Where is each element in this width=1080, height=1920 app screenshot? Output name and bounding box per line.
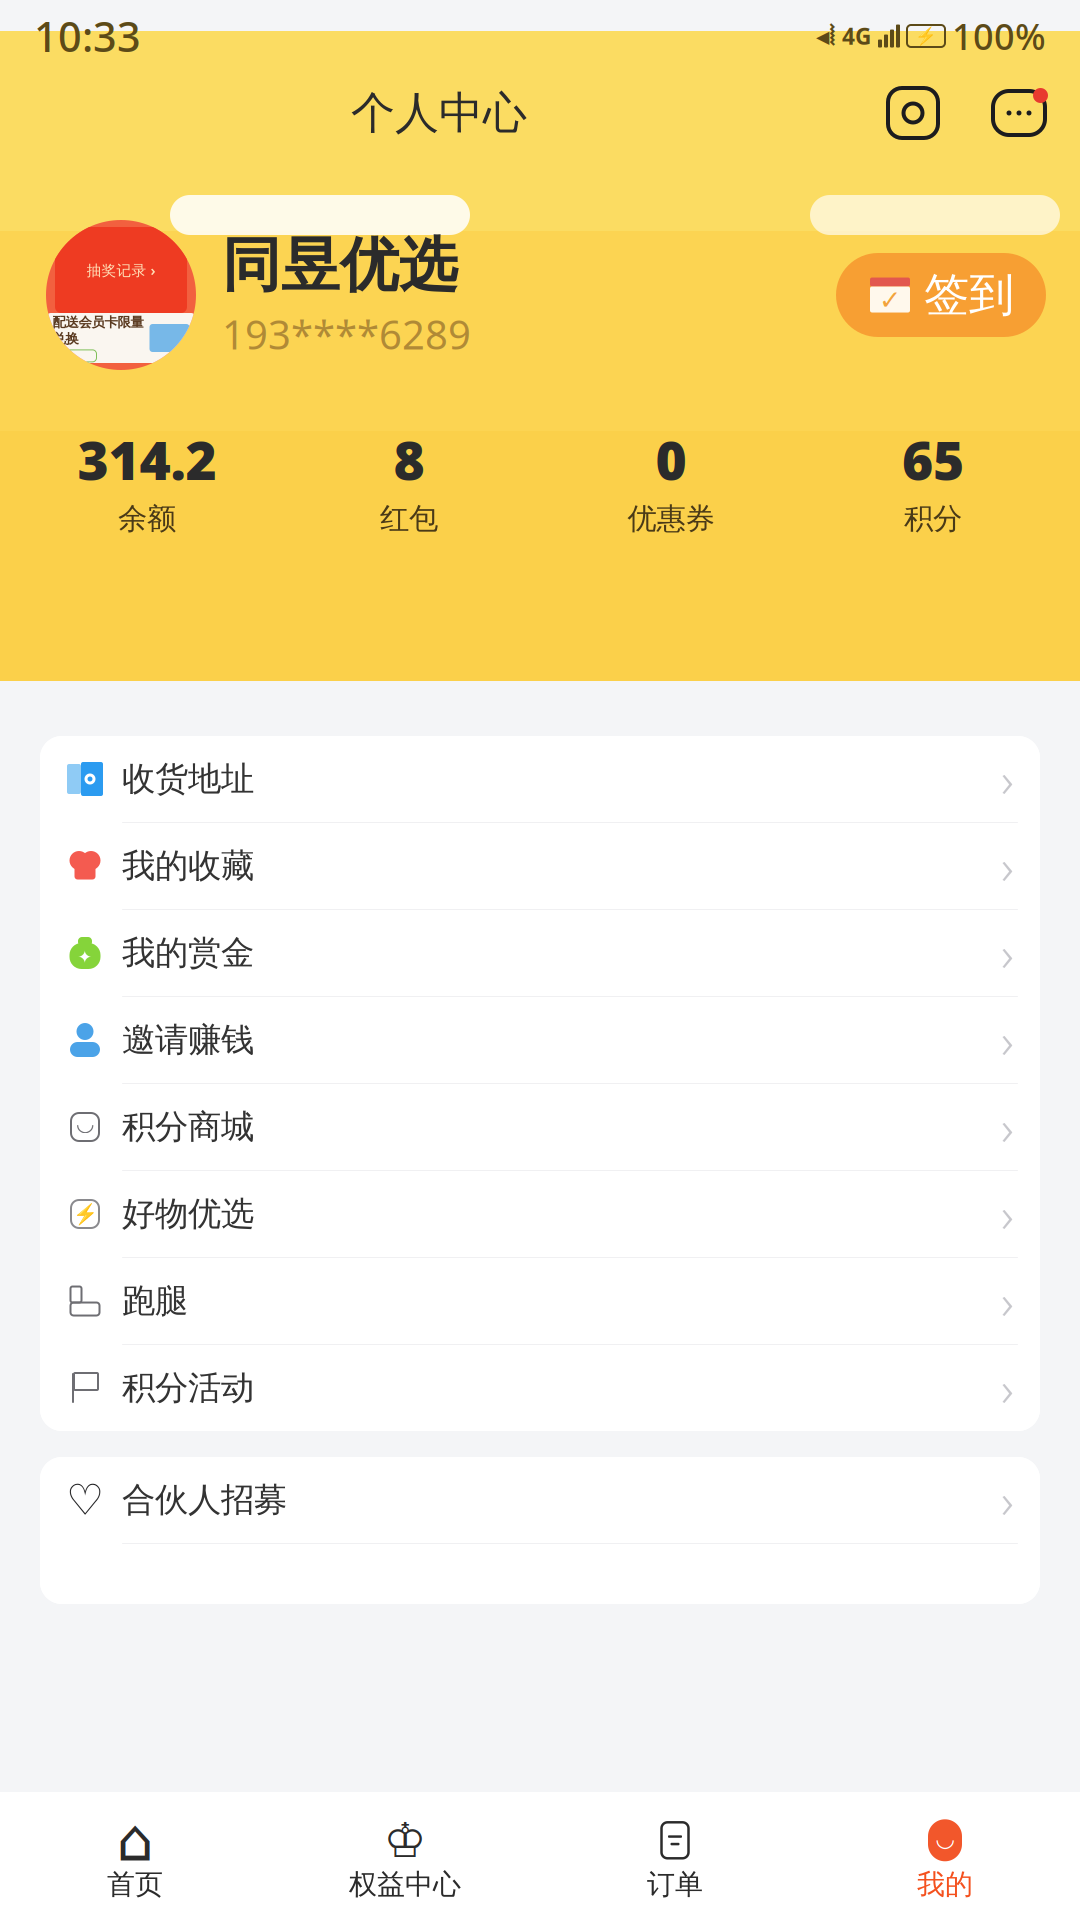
staticText: 0 [655, 424, 686, 495]
staticText: 红包 [380, 501, 438, 537]
staticText: 193****6289 [222, 307, 471, 361]
staticText: ◡ [77, 1111, 93, 1135]
button[interactable]: ✦ [40, 910, 1040, 997]
staticText: 优惠券 [627, 501, 714, 537]
staticText: 余额 [118, 501, 176, 537]
staticText: 8 [393, 424, 424, 495]
staticText: 10:33 [34, 9, 141, 63]
staticText: ⚡ [915, 26, 937, 46]
staticText: 好物优选 [122, 1193, 254, 1234]
staticText: 个人中心 [351, 86, 527, 140]
staticText: ⚡ [72, 1203, 97, 1225]
staticText: ♔ [383, 1813, 426, 1868]
staticText: 权益中心 [349, 1867, 461, 1902]
staticText: 65 [902, 424, 964, 495]
staticText: › [1001, 921, 1014, 985]
staticText: 抽奖记录 › [86, 260, 155, 280]
staticText: 订单 [647, 1867, 703, 1902]
button[interactable]: ◡ [40, 1084, 1040, 1171]
staticText: › [1001, 834, 1014, 898]
button[interactable]: ⌂ [0, 1810, 270, 1902]
staticText: › [1001, 747, 1014, 811]
staticText: › [1001, 1468, 1014, 1532]
staticText: 我的赏金 [122, 932, 254, 973]
button[interactable]: 8 [278, 420, 540, 541]
button[interactable]: ◡ [810, 1810, 1080, 1902]
button[interactable]: 订单 [540, 1810, 810, 1902]
button[interactable]: 收货地址 [40, 736, 1040, 823]
staticText: 同昱优选 [222, 229, 458, 301]
staticText: › [1001, 1269, 1014, 1333]
staticText: ✦ [77, 947, 92, 967]
staticText: 积分商城 [122, 1106, 254, 1147]
staticText: 邀请赚钱 [122, 1019, 254, 1060]
staticText: 积分 [904, 501, 962, 537]
staticText: 314.2 [77, 424, 216, 495]
button[interactable]: 314.2 [16, 420, 278, 541]
staticText: ⌂ [116, 1807, 153, 1874]
button[interactable]: 0 [540, 420, 802, 541]
staticText: › [1001, 1356, 1014, 1420]
staticText: 我的收藏 [122, 845, 254, 886]
staticText: 首页 [107, 1867, 163, 1902]
staticText: 配送会员卡限量兑换 [52, 314, 143, 347]
button[interactable]: 我的收藏 [40, 823, 1040, 910]
staticText: ◂⦚ [816, 21, 835, 51]
staticText: 积分活动 [122, 1367, 254, 1408]
staticText: 我的 [917, 1867, 973, 1902]
button[interactable]: 积分活动 [40, 1345, 1040, 1431]
staticText: › [1001, 1008, 1014, 1072]
button[interactable]: 跑腿 [40, 1258, 1040, 1345]
staticText: 4G [842, 21, 871, 51]
staticText: ✓ [879, 285, 901, 315]
button[interactable]: 65 [802, 420, 1064, 541]
button[interactable]: 邀请赚钱 [40, 997, 1040, 1084]
button[interactable]: ♔ [270, 1810, 540, 1902]
staticText: 签到 [924, 267, 1014, 323]
staticText: › [1001, 1182, 1014, 1246]
staticText: 跑腿 [122, 1280, 188, 1321]
staticText: 收货地址 [122, 758, 254, 799]
staticText: ◡ [936, 1825, 953, 1851]
staticText: ♡ [66, 1476, 104, 1524]
staticText: › [1001, 1095, 1014, 1159]
staticText: 100% [952, 12, 1046, 60]
button[interactable]: Messages [984, 78, 1054, 148]
button[interactable]: ♡ [40, 1457, 1040, 1544]
button[interactable]: Settings [878, 78, 948, 148]
button[interactable]: ⚡ [40, 1171, 1040, 1258]
button[interactable]: ✓ [836, 253, 1046, 337]
staticText: 合伙人招募 [122, 1479, 287, 1520]
